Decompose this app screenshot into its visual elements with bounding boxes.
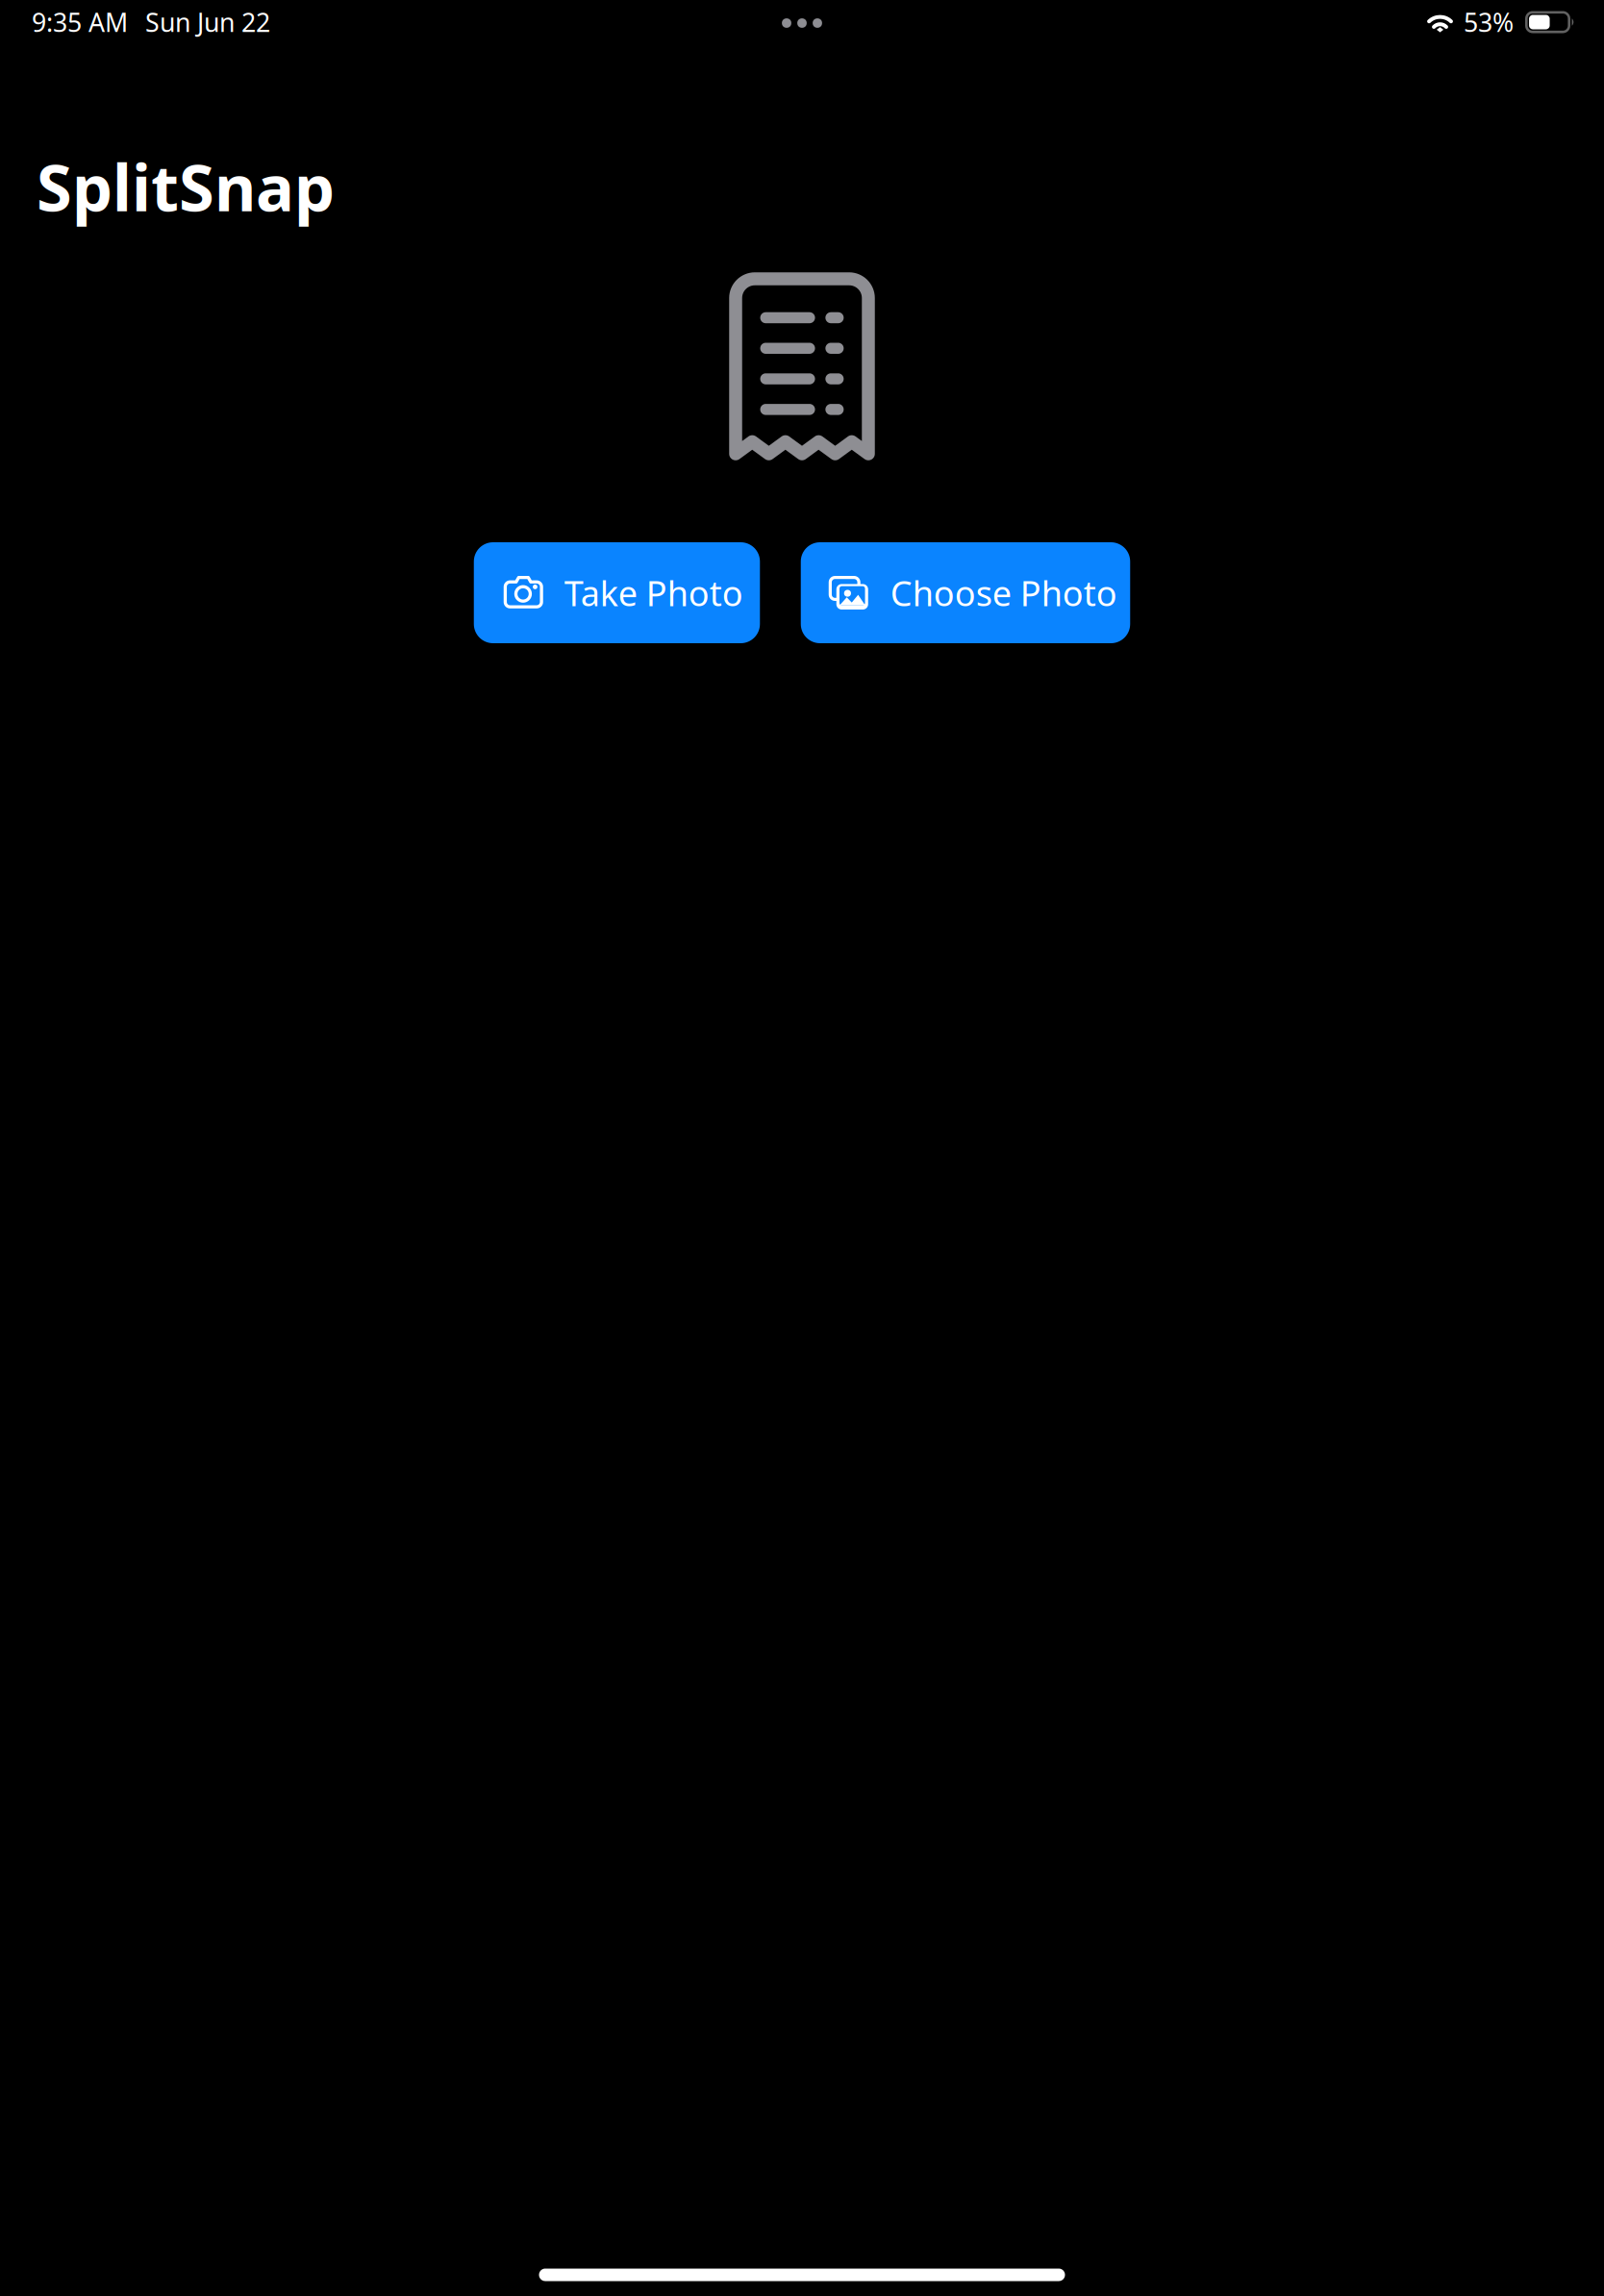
- staticText: Take Photo: [564, 570, 743, 616]
- staticText: 53%: [1464, 5, 1514, 39]
- staticText: 9:35 AM: [32, 5, 128, 39]
- staticText: SplitSnap: [37, 144, 335, 229]
- staticText: Sun Jun 22: [145, 5, 270, 39]
- button[interactable]: Take Photo: [474, 542, 760, 643]
- button[interactable]: Choose Photo: [801, 542, 1130, 643]
- staticText: Choose Photo: [890, 570, 1117, 616]
